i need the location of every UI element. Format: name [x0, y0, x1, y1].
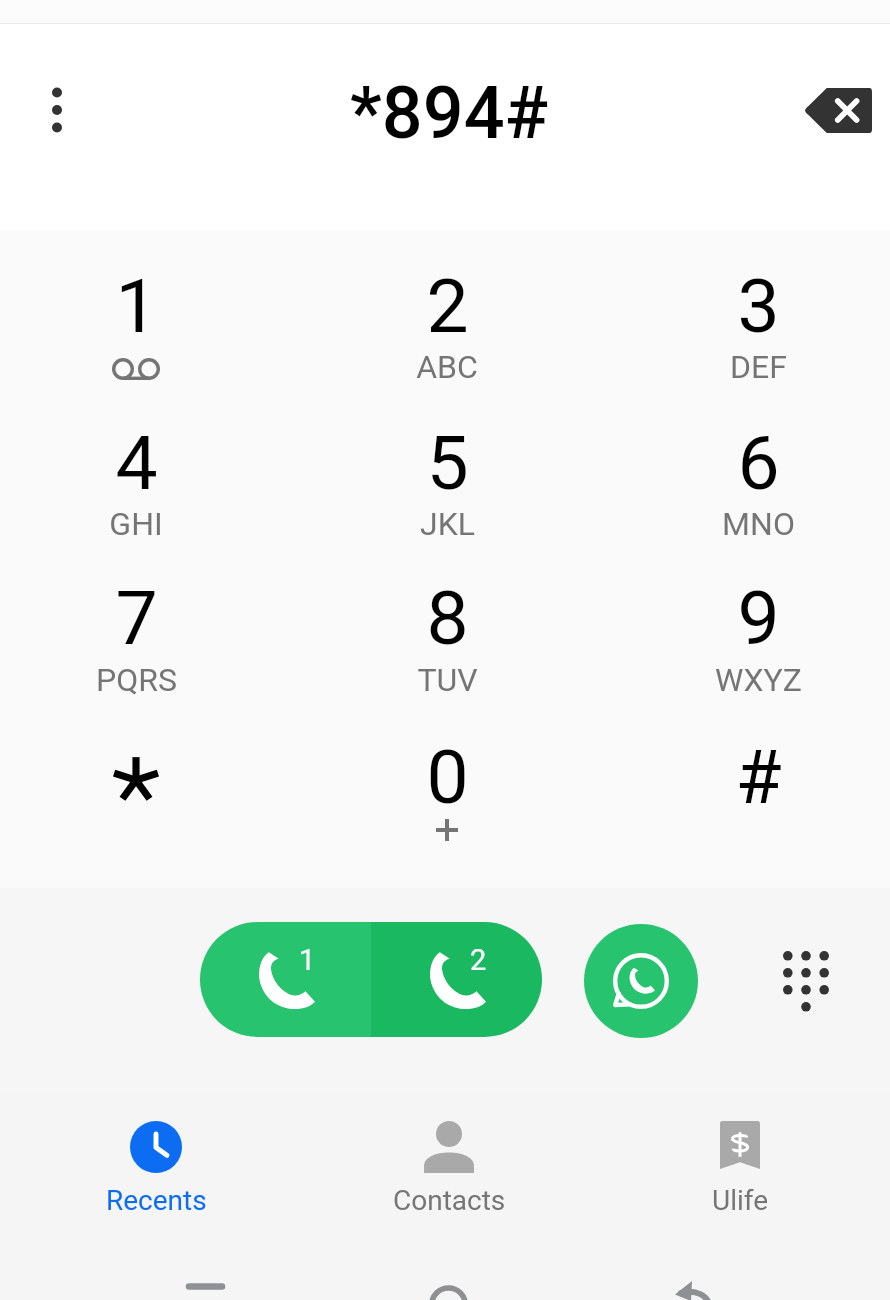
staticText: 2	[470, 943, 487, 977]
button[interactable]: Key 0	[292, 722, 600, 886]
button[interactable]: Backspace	[790, 75, 886, 145]
staticText: 8	[426, 574, 469, 662]
button[interactable]: Contacts	[359, 1100, 539, 1230]
staticText: 1	[299, 943, 316, 977]
staticText: Recents	[106, 1184, 207, 1217]
button[interactable]: Key 2	[292, 230, 600, 394]
button[interactable]: Key 3	[600, 230, 890, 394]
staticText: JKL	[420, 505, 475, 543]
staticText: Ulife	[712, 1184, 769, 1217]
button[interactable]: Key 5	[292, 394, 600, 558]
button[interactable]: Key #	[600, 722, 890, 886]
staticText: DEF	[730, 348, 787, 386]
staticText: GHI	[109, 505, 163, 543]
button[interactable]: Recent apps	[154, 1256, 254, 1300]
staticText: 6	[737, 419, 780, 507]
staticText: MNO	[722, 505, 795, 543]
button[interactable]: Back	[640, 1256, 750, 1300]
staticText: PQRS	[96, 661, 177, 699]
button[interactable]: Call with SIM 2	[371, 922, 542, 1037]
button[interactable]: Key *	[0, 722, 292, 886]
button[interactable]: Key 1	[0, 230, 292, 394]
staticText: *894#	[350, 71, 549, 155]
button[interactable]: Hide dialpad	[761, 929, 851, 1034]
button[interactable]: Home	[398, 1256, 498, 1300]
staticText: 4	[115, 419, 158, 507]
staticText: 5	[426, 419, 469, 507]
button[interactable]: WhatsApp call	[584, 924, 698, 1038]
staticText: 0	[426, 733, 469, 821]
button[interactable]: Recents	[66, 1100, 246, 1230]
button[interactable]: Key 9	[600, 558, 890, 722]
button[interactable]: Key 7	[0, 558, 292, 722]
button[interactable]: Key 8	[292, 558, 600, 722]
staticText: WXYZ	[715, 661, 802, 699]
staticText: 2	[426, 262, 469, 350]
button[interactable]: Ulife	[650, 1100, 830, 1230]
staticText: 7	[115, 574, 158, 662]
staticText: 3	[737, 262, 780, 350]
staticText: ABC	[416, 348, 478, 386]
staticText: Contacts	[393, 1184, 506, 1217]
button[interactable]: Key 4	[0, 394, 292, 558]
staticText: #	[735, 733, 782, 821]
staticText: 9	[737, 574, 780, 662]
button[interactable]: Call with SIM 1	[200, 922, 371, 1037]
staticText: TUV	[417, 661, 478, 699]
button[interactable]: More options	[22, 75, 92, 145]
staticText: 1	[115, 262, 158, 350]
button[interactable]: Key 6	[600, 394, 890, 558]
